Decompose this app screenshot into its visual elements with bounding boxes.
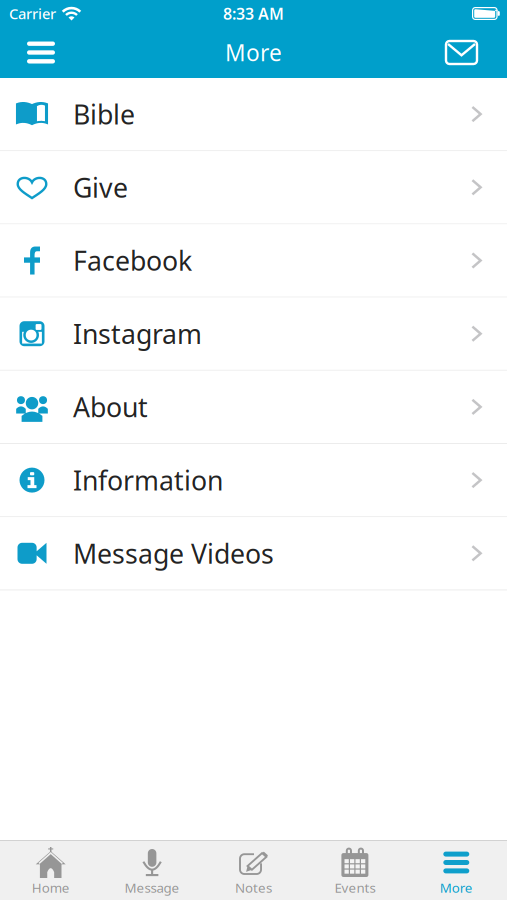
staticText: Instagram [73, 316, 202, 351]
button[interactable]: Instagram [0, 298, 507, 371]
staticText: Home [32, 879, 70, 896]
staticText: Bible [73, 96, 135, 132]
button[interactable]: Message [101, 841, 203, 900]
staticText: Events [334, 879, 375, 896]
button[interactable]: Home [0, 841, 101, 900]
staticText: Notes [235, 879, 272, 896]
staticText: Message [125, 879, 180, 896]
staticText: Facebook [73, 243, 192, 278]
button[interactable]: Messages [430, 27, 507, 78]
button[interactable]: Facebook [0, 224, 507, 298]
staticText: About [73, 389, 148, 425]
staticText: More [225, 37, 282, 67]
button[interactable]: About [0, 371, 507, 444]
button[interactable]: Events [304, 841, 406, 900]
staticText: Give [73, 170, 128, 205]
button[interactable]: Give [0, 151, 507, 224]
button[interactable]: Message Videos [0, 517, 507, 590]
button[interactable]: Notes [203, 841, 304, 900]
staticText: Information [73, 462, 223, 498]
button[interactable]: Bible [0, 78, 507, 151]
staticText: Message Videos [73, 536, 274, 571]
button[interactable]: More [406, 841, 507, 900]
button[interactable]: Menu [0, 27, 71, 78]
staticText: More [440, 879, 473, 896]
button[interactable]: Information [0, 444, 507, 517]
staticText: Carrier [9, 4, 56, 23]
staticText: 8:33 AM [223, 3, 284, 24]
